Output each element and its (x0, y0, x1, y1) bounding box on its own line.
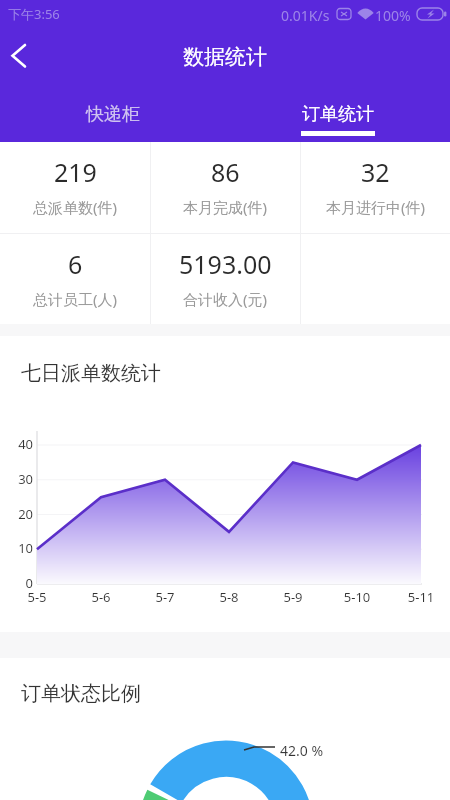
staticText: 本月完成(件) (183, 197, 268, 217)
staticText: 42.0 % (280, 741, 324, 760)
staticText: 40 (5, 435, 33, 453)
staticText: 20 (5, 505, 33, 523)
staticText: 下午3:56 (8, 5, 60, 23)
staticText: 0 (5, 574, 33, 592)
button[interactable]: 订单统计 (225, 86, 450, 142)
staticText: 6 (68, 247, 83, 281)
staticText: 0.01K/s (281, 6, 330, 25)
staticText: 86 (211, 155, 240, 189)
staticText: 总派单数(件) (33, 197, 118, 217)
staticText: 5-9 (268, 588, 318, 606)
staticText: 七日派单数统计 (21, 361, 161, 386)
staticText: 32 (361, 155, 390, 189)
staticText: 100% (375, 6, 411, 25)
staticText: 5-10 (332, 588, 382, 606)
staticText: 合计收入(元) (183, 289, 268, 309)
button[interactable]: 快递柜 (0, 86, 225, 142)
staticText: 数据统计 (183, 44, 267, 70)
staticText: 5-7 (140, 588, 190, 606)
staticText: 订单状态比例 (21, 681, 141, 706)
staticText: 219 (54, 155, 97, 189)
staticText: 5-11 (396, 588, 446, 606)
staticText: 5193.00 (179, 247, 272, 281)
staticText: 本月进行中(件) (326, 197, 426, 217)
staticText: 10 (5, 539, 33, 557)
staticText: 5-6 (76, 588, 126, 606)
button[interactable]: 返回 (0, 34, 46, 80)
staticText: 30 (5, 470, 33, 488)
staticText: 5-8 (204, 588, 254, 606)
staticText: 快递柜 (86, 103, 140, 126)
staticText: 5-5 (12, 588, 62, 606)
staticText: 订单统计 (302, 103, 374, 126)
staticText: 总计员工(人) (33, 289, 118, 309)
